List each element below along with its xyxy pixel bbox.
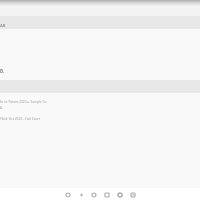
staticText: In re: Patent 2023 v. Sample Co. — [0, 100, 48, 104]
button[interactable]: AB — [0, 16, 200, 29]
button[interactable]: Back — [74, 190, 87, 200]
staticText: Filed: Oct 2023 - Civil Court — [0, 117, 41, 121]
button[interactable]: Assistant — [61, 190, 74, 200]
staticText: AB — [0, 23, 6, 28]
staticText: A. — [0, 106, 3, 110]
button[interactable]: Apps — [100, 190, 113, 200]
button[interactable]: Recent apps — [126, 190, 139, 200]
button[interactable]: Settings — [113, 190, 126, 200]
staticText: B. — [0, 68, 5, 74]
button[interactable]: Home — [87, 190, 100, 200]
